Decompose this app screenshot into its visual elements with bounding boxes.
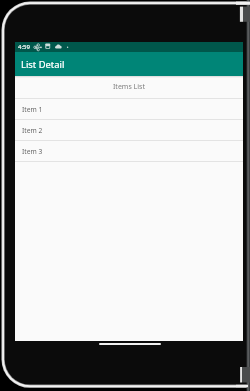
staticText: 4:59: [18, 43, 30, 51]
staticText: Item 2: [22, 126, 43, 135]
button[interactable]: Item 2: [15, 120, 243, 140]
button[interactable]: Item 3: [15, 141, 243, 161]
staticText: Item 1: [22, 105, 43, 114]
staticText: Item 3: [22, 147, 43, 156]
button[interactable]: Item 1: [15, 99, 243, 119]
staticText: Items List: [113, 82, 145, 92]
staticText: List Detail: [21, 58, 65, 71]
other: Home: [99, 343, 161, 345]
